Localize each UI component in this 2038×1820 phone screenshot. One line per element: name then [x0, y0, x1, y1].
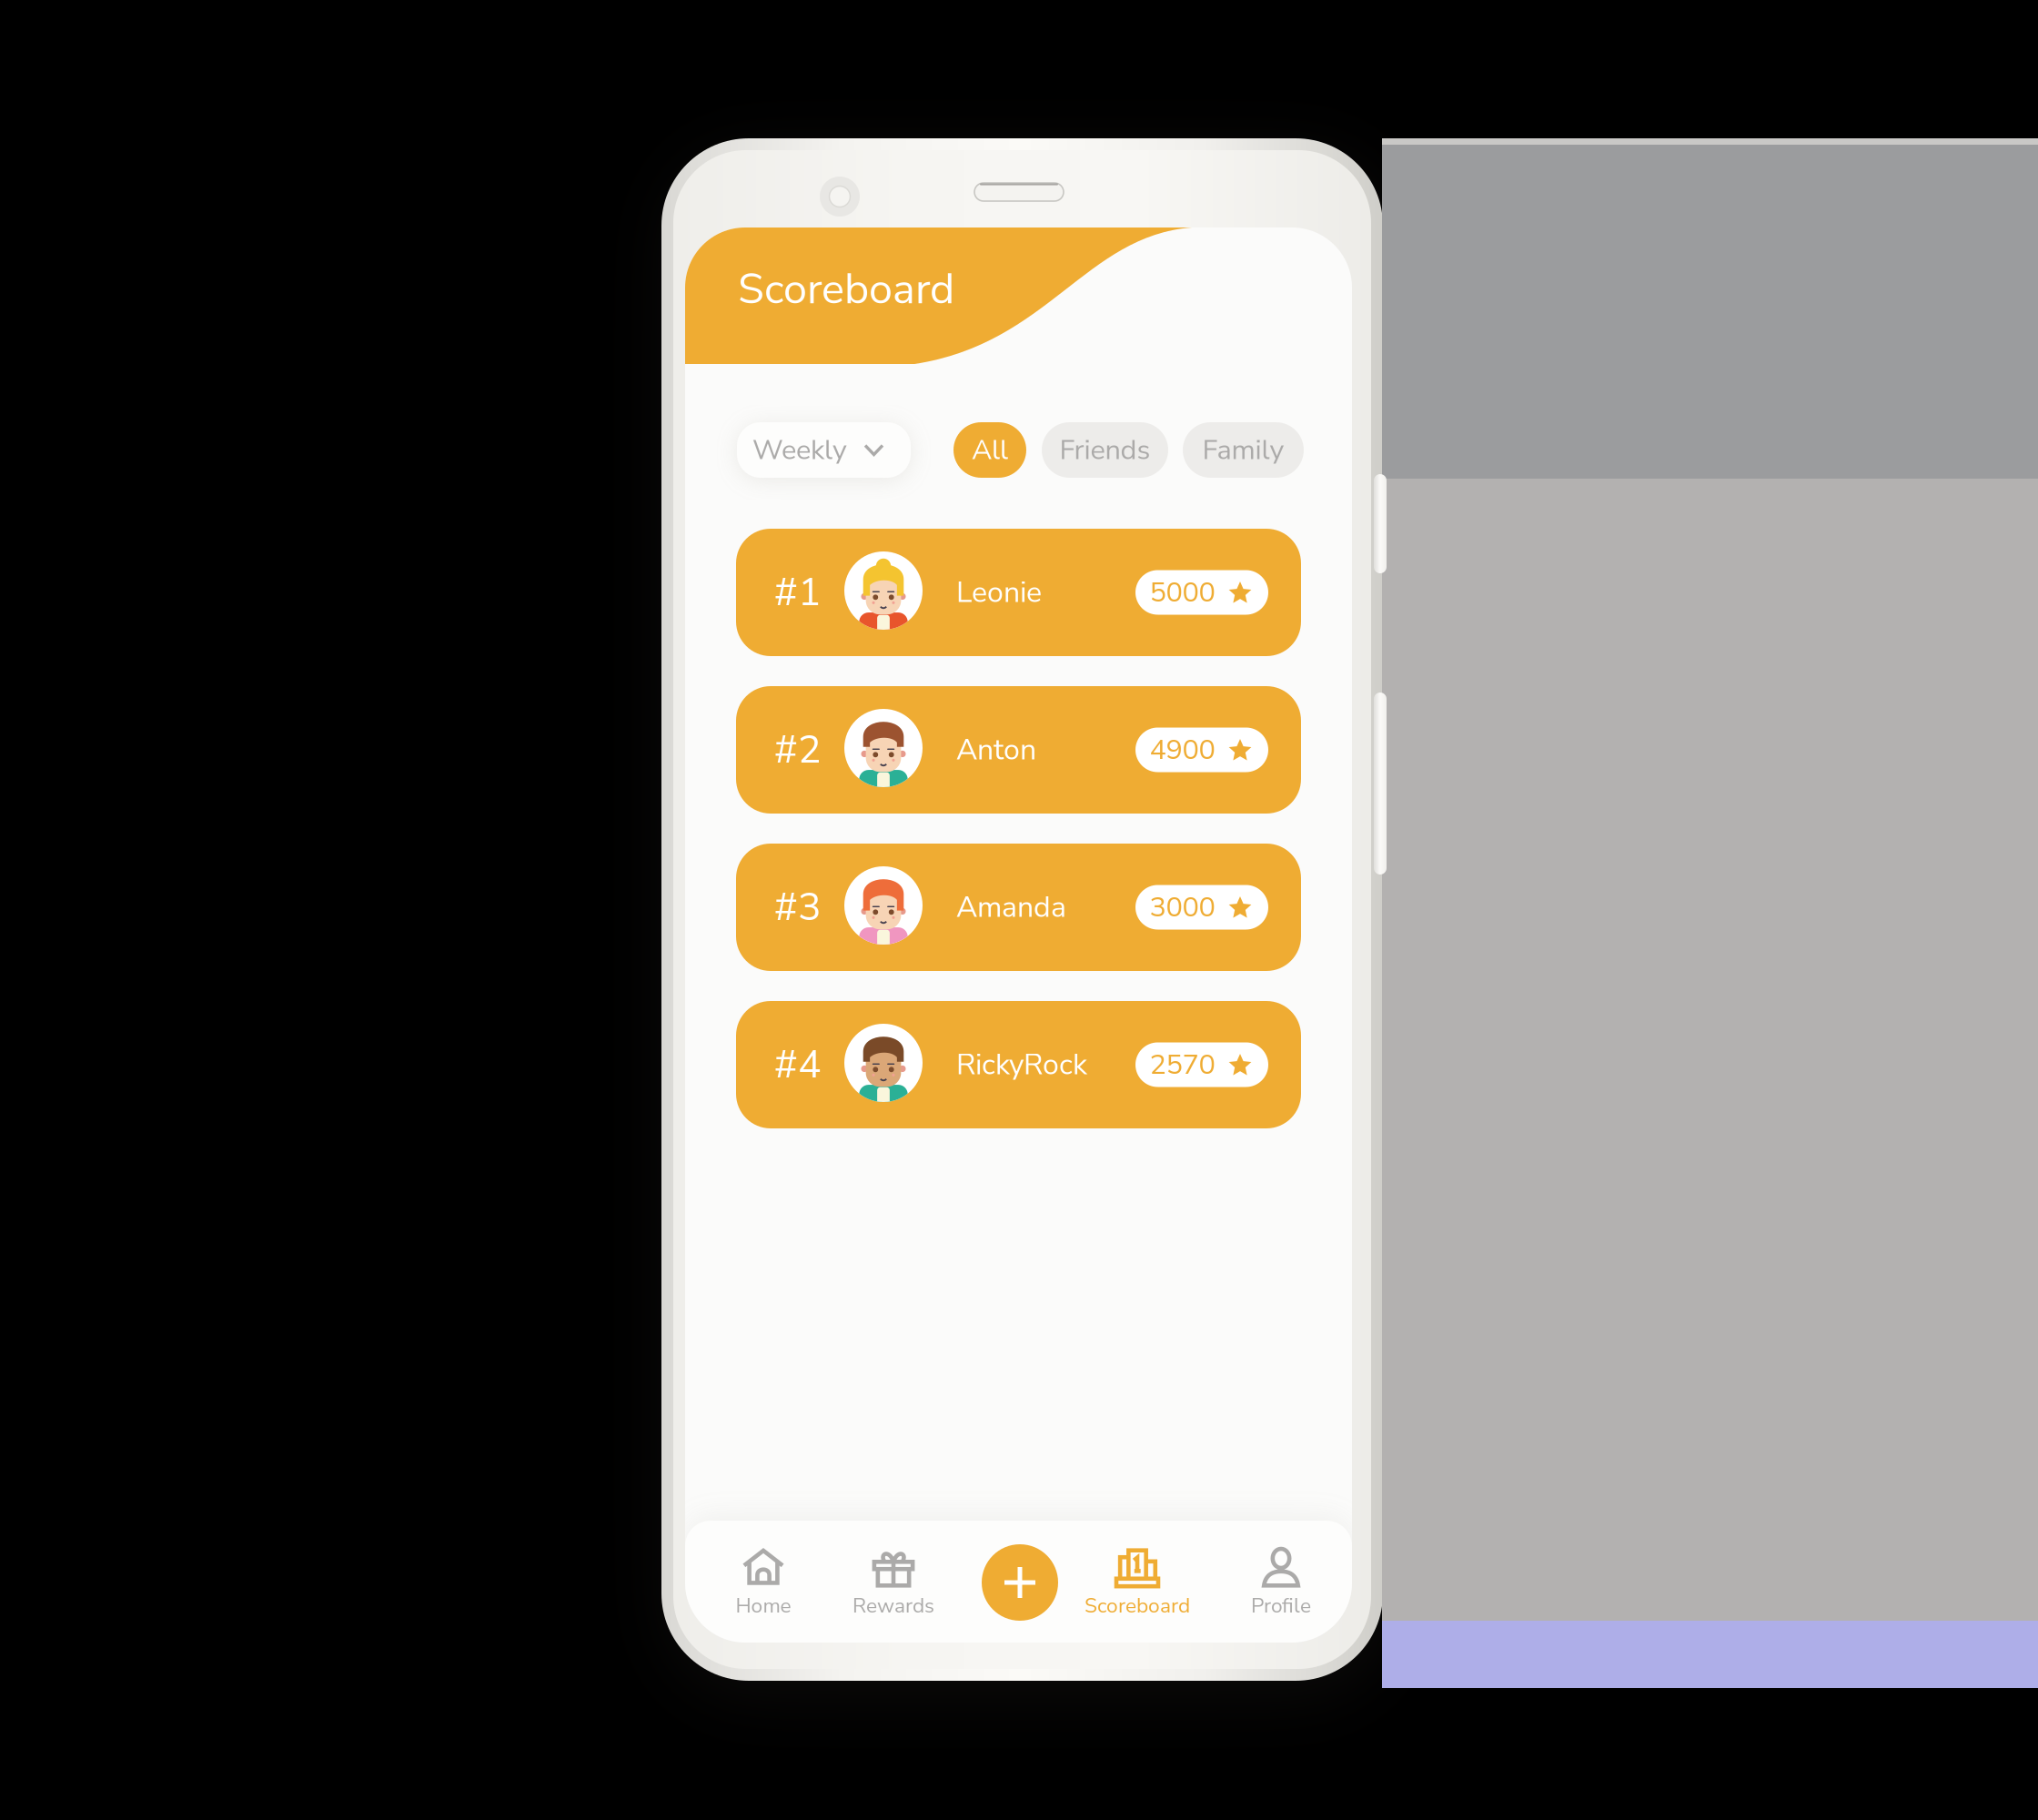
button[interactable]: Profile — [1213, 1521, 1349, 1624]
staticText: #3 — [774, 881, 822, 934]
staticText: 3000 — [1150, 888, 1215, 926]
staticText: Leonie — [956, 573, 1042, 612]
staticText: All — [972, 431, 1008, 469]
staticText: Anton — [956, 730, 1036, 770]
button[interactable]: #1 — [736, 529, 1301, 656]
staticText: Scoreboard — [1085, 1592, 1190, 1620]
staticText: 4900 — [1150, 731, 1215, 769]
staticText: Friends — [1059, 431, 1150, 469]
button[interactable]: #3 — [736, 844, 1301, 971]
button[interactable]: Add — [982, 1544, 1058, 1621]
staticText: Family — [1202, 431, 1284, 469]
staticText: Weekly — [752, 431, 847, 469]
button[interactable]: Scoreboard — [1069, 1521, 1206, 1624]
button[interactable]: Weekly — [737, 422, 911, 478]
button[interactable]: Rewards — [825, 1521, 962, 1624]
staticText: RickyRock — [956, 1045, 1087, 1085]
staticText: Home — [736, 1592, 791, 1620]
staticText: Rewards — [853, 1592, 934, 1620]
button[interactable]: Friends — [1042, 422, 1168, 478]
staticText: 2570 — [1150, 1046, 1215, 1084]
button[interactable]: Home — [695, 1521, 832, 1624]
button[interactable]: #4 — [736, 1001, 1301, 1128]
button[interactable]: #2 — [736, 686, 1301, 814]
staticText: #2 — [774, 723, 822, 776]
staticText: 5000 — [1150, 573, 1215, 611]
staticText: Scoreboard — [738, 260, 954, 318]
staticText: Amanda — [956, 887, 1066, 927]
staticText: #4 — [774, 1038, 822, 1091]
staticText: #1 — [774, 566, 822, 619]
button[interactable]: Family — [1183, 422, 1304, 478]
button[interactable]: All — [953, 422, 1026, 478]
staticText: Profile — [1251, 1592, 1311, 1620]
